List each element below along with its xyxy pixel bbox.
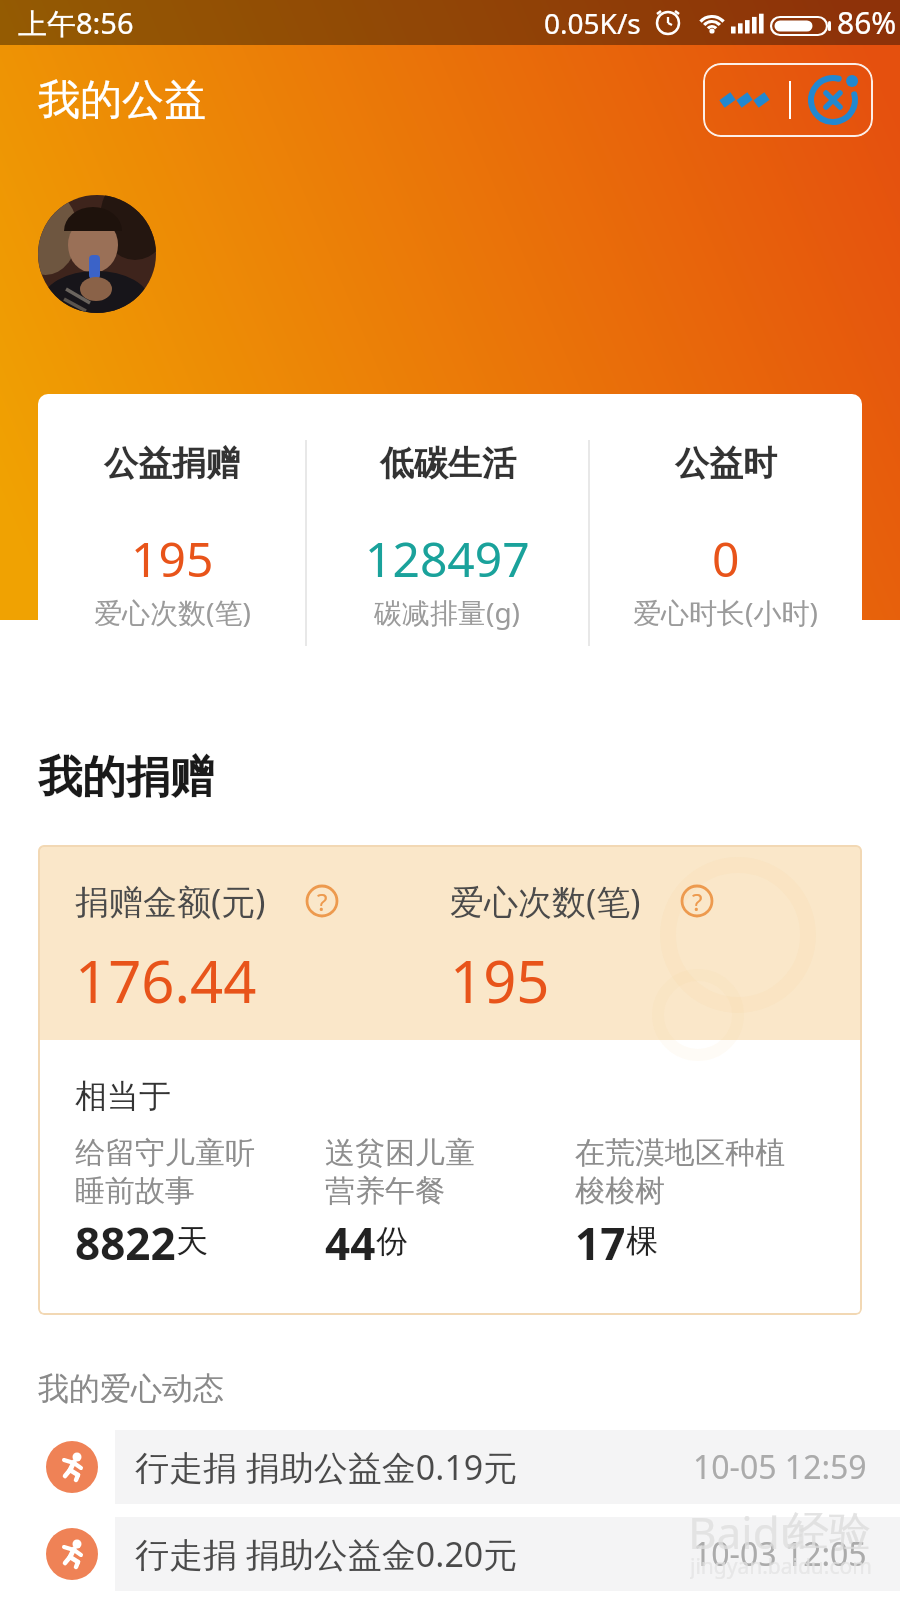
staticText: 128497 — [365, 526, 530, 586]
staticText: 爱心次数(笔) — [94, 593, 251, 631]
staticText: 捐赠金额(元) — [75, 878, 266, 924]
staticText: 我的爱心动态 — [38, 1369, 224, 1408]
staticText: 给留守儿童听 — [75, 1134, 255, 1172]
staticText: 195 — [131, 526, 214, 586]
staticText: jingyan.baidu.com — [690, 1552, 872, 1580]
staticText: 低碳生活 — [380, 442, 516, 485]
button[interactable] — [589, 394, 862, 682]
staticText: 在荒漠地区种植 — [575, 1134, 785, 1172]
button[interactable]: 行走捐 捐助公益金0.20元 — [115, 1517, 900, 1591]
button[interactable] — [680, 884, 714, 918]
staticText: 爱心次数(笔) — [450, 878, 641, 924]
staticText: 棵 — [626, 1221, 658, 1261]
staticText: 我的公益 — [38, 74, 206, 127]
button[interactable] — [306, 394, 589, 682]
staticText: 营养午餐 — [325, 1172, 445, 1210]
staticText: 10-03 12:05 — [693, 1532, 867, 1576]
staticText: 相当于 — [75, 1076, 171, 1116]
staticText: 0.05K/s — [544, 4, 641, 42]
staticText: 公益时 — [675, 442, 777, 485]
button[interactable] — [305, 884, 339, 918]
staticText: ? — [692, 885, 703, 918]
staticText: 公益捐赠 — [104, 442, 240, 485]
staticText: 天 — [176, 1221, 208, 1261]
staticText: 0 — [712, 526, 740, 586]
staticText: 行走捐 捐助公益金0.20元 — [135, 1531, 518, 1577]
staticText: 我的捐赠 — [38, 750, 214, 805]
staticText: 梭梭树 — [575, 1172, 665, 1210]
staticText: 上午8:56 — [18, 3, 134, 43]
staticText: 44 — [325, 1213, 376, 1269]
staticText: 行走捐 捐助公益金0.19元 — [135, 1444, 518, 1490]
staticText: ? — [317, 885, 328, 918]
staticText: 睡前故事 — [75, 1172, 195, 1210]
button[interactable]: 行走捐 捐助公益金0.19元 — [115, 1430, 900, 1504]
staticText: Baidu — [688, 1502, 807, 1558]
staticText: 份 — [376, 1221, 408, 1261]
button[interactable] — [703, 63, 873, 137]
staticText: 10-05 12:59 — [693, 1445, 867, 1489]
button[interactable] — [38, 195, 156, 313]
button[interactable] — [38, 394, 306, 682]
staticText: 碳减排量(g) — [374, 593, 521, 631]
staticText: 86% — [837, 2, 897, 43]
staticText: 经验 — [787, 1506, 871, 1559]
staticText: 195 — [450, 941, 550, 1013]
staticText: 176.44 — [75, 941, 257, 1013]
staticText: 8822 — [75, 1213, 176, 1269]
staticText: 17 — [575, 1213, 626, 1269]
staticText: 送贫困儿童 — [325, 1134, 475, 1172]
staticText: 爱心时长(小时) — [633, 593, 818, 631]
